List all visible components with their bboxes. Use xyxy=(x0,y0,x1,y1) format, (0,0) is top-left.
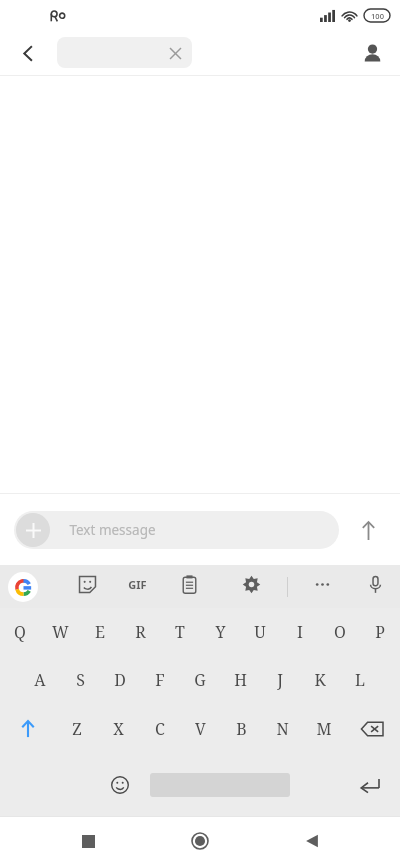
button[interactable]: J xyxy=(260,656,300,704)
button[interactable]: O xyxy=(320,608,360,656)
button[interactable]: W xyxy=(40,608,80,656)
button[interactable]: G xyxy=(180,656,220,704)
staticText: A xyxy=(34,669,46,691)
button[interactable]: Clipboard xyxy=(172,570,206,599)
staticText: D xyxy=(114,669,126,691)
button[interactable]: E xyxy=(80,608,120,656)
button[interactable]: Home xyxy=(176,817,224,865)
button[interactable]: Settings xyxy=(234,570,268,599)
button[interactable]: R xyxy=(120,608,160,656)
staticText: J xyxy=(277,669,283,691)
staticText: M xyxy=(316,718,332,740)
button[interactable]: Enter xyxy=(346,761,394,809)
button[interactable]: U xyxy=(240,608,280,656)
button[interactable]: B xyxy=(221,704,262,754)
button[interactable]: Clear xyxy=(57,37,192,68)
staticText: GIF xyxy=(128,577,147,592)
button[interactable]: A xyxy=(20,656,60,704)
button[interactable]: K xyxy=(300,656,340,704)
button[interactable]: Send xyxy=(349,511,387,549)
button[interactable]: C xyxy=(139,704,180,754)
staticText: Text message xyxy=(69,521,156,539)
staticText: Y xyxy=(215,621,226,643)
button[interactable]: Back xyxy=(12,37,44,69)
staticText: X xyxy=(113,718,124,740)
button[interactable]: Voice input xyxy=(358,570,392,599)
button[interactable]: Stickers xyxy=(70,570,104,599)
staticText: G xyxy=(194,669,206,691)
button[interactable]: I xyxy=(280,608,320,656)
button[interactable]: P xyxy=(360,608,400,656)
button[interactable]: V xyxy=(180,704,221,754)
staticText: I xyxy=(297,621,303,643)
button[interactable]: Emoji xyxy=(100,765,140,805)
button[interactable]: GIF xyxy=(120,570,154,599)
button[interactable]: Z xyxy=(56,704,98,754)
staticText: C xyxy=(155,718,165,740)
button[interactable]: L xyxy=(340,656,380,704)
button[interactable]: Clear xyxy=(166,44,184,62)
staticText: R xyxy=(135,621,146,643)
staticText: F xyxy=(155,669,165,691)
staticText: 100 xyxy=(371,11,384,21)
staticText: K xyxy=(314,669,326,691)
button[interactable]: N xyxy=(262,704,303,754)
staticText: L xyxy=(355,669,365,691)
staticText: N xyxy=(276,718,289,740)
staticText: E xyxy=(95,621,105,643)
button[interactable]: H xyxy=(220,656,260,704)
button[interactable]: Shift xyxy=(0,704,56,754)
button[interactable]: M xyxy=(303,704,344,754)
staticText: S xyxy=(76,669,85,691)
staticText: Z xyxy=(72,718,82,740)
button[interactable]: Back xyxy=(288,817,336,865)
button[interactable]: F xyxy=(140,656,180,704)
button[interactable]: Recent apps xyxy=(64,817,112,865)
staticText: P xyxy=(375,621,385,643)
button[interactable]: T xyxy=(160,608,200,656)
button[interactable]: X xyxy=(98,704,139,754)
staticText: O xyxy=(334,621,346,643)
staticText: H xyxy=(234,669,247,691)
staticText: T xyxy=(175,621,185,643)
staticText: V xyxy=(195,718,206,740)
button[interactable]: Q xyxy=(0,608,40,656)
staticText: U xyxy=(254,621,266,643)
button[interactable]: D xyxy=(100,656,140,704)
staticText: B xyxy=(236,718,247,740)
button[interactable]: Add attachment xyxy=(14,511,339,549)
staticText: W xyxy=(52,621,69,643)
button[interactable]: Backspace xyxy=(344,704,400,754)
button[interactable]: Contact details xyxy=(354,35,390,71)
button[interactable]: Google search xyxy=(8,572,38,602)
button[interactable]: More options xyxy=(305,570,339,599)
button[interactable]: Add attachment xyxy=(16,513,50,547)
staticText: Q xyxy=(14,621,26,643)
button[interactable]: Y xyxy=(200,608,240,656)
button[interactable]: S xyxy=(60,656,100,704)
